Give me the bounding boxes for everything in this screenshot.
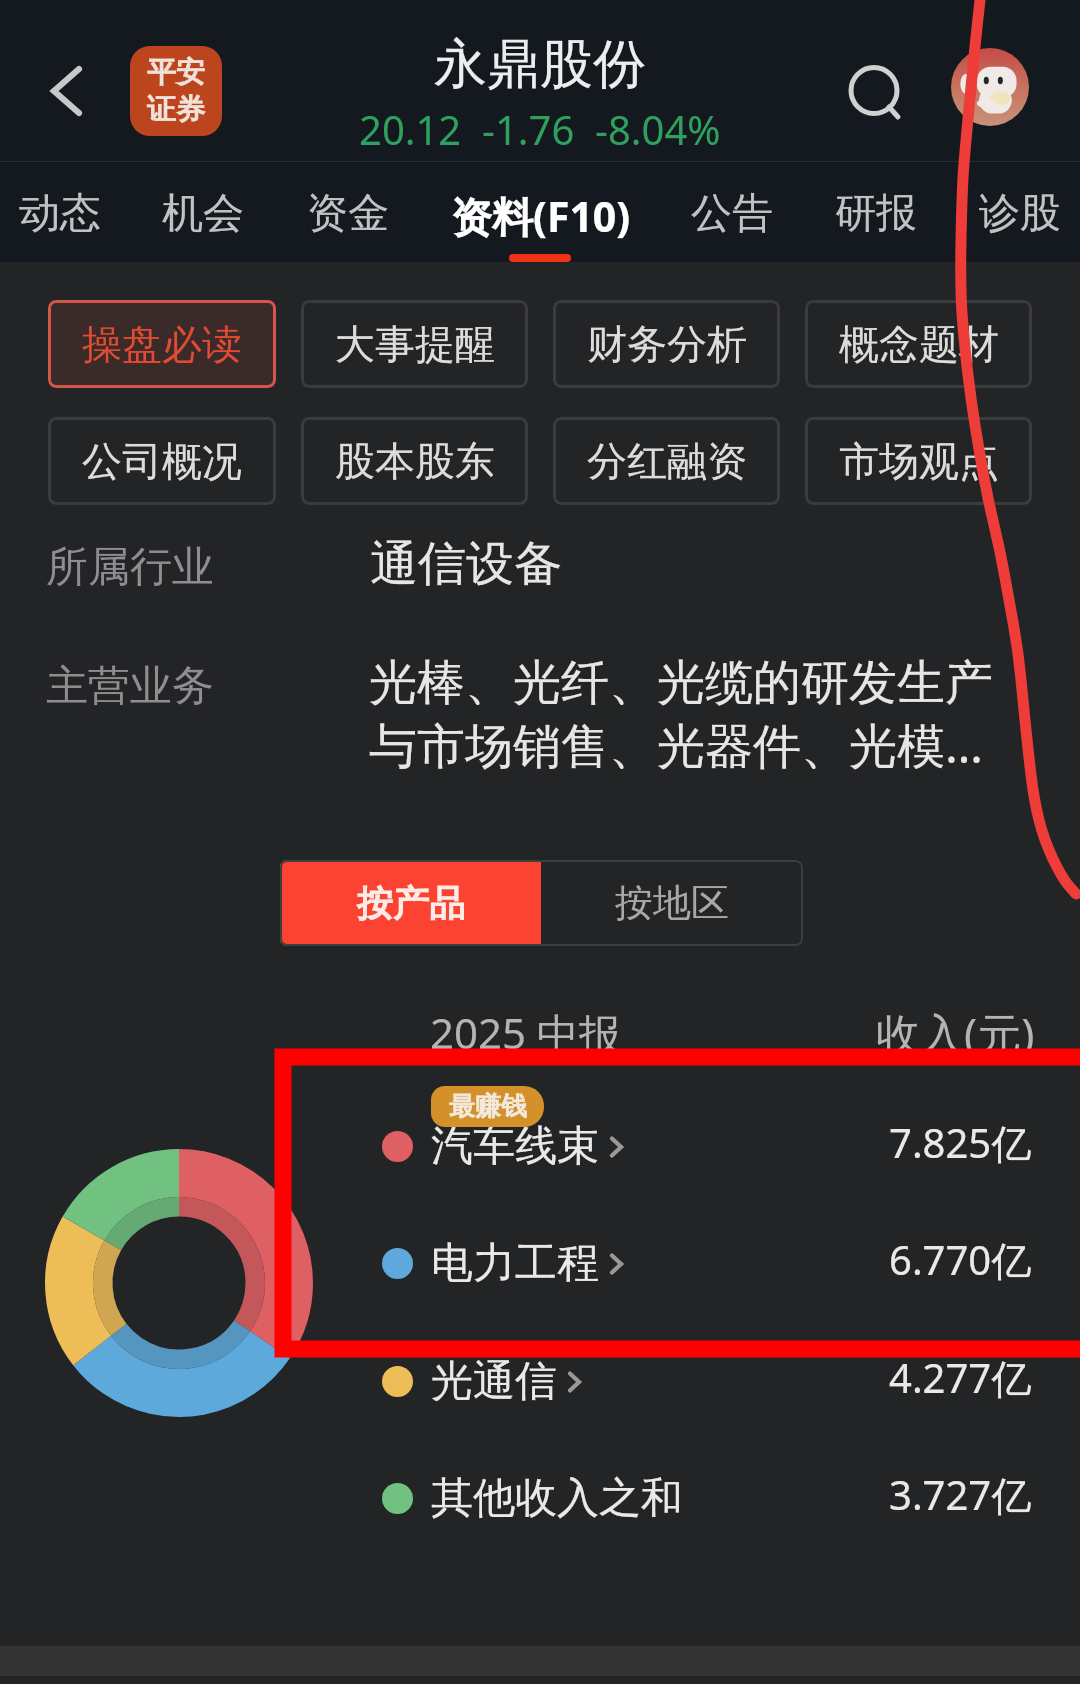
- staticText: 主营业务: [46, 660, 214, 713]
- staticText: 永鼎股份: [434, 31, 646, 98]
- staticText: 机会: [162, 188, 244, 240]
- button[interactable]: 股本股东: [301, 417, 528, 505]
- staticText: 资料(F10): [451, 188, 631, 244]
- staticText: 分红融资: [587, 436, 747, 486]
- staticText: 按产品: [357, 881, 465, 926]
- staticText: 光通信: [431, 1355, 557, 1408]
- staticText: 通信设备: [370, 534, 562, 594]
- staticText: 最赚钱: [449, 1090, 527, 1123]
- button[interactable]: 按地区: [541, 860, 803, 946]
- button[interactable]: 光通信: [382, 1333, 1032, 1429]
- button[interactable]: 资金: [268, 170, 428, 262]
- button[interactable]: 概念题材: [805, 300, 1032, 388]
- button[interactable]: 汽车线束: [382, 1098, 1032, 1194]
- staticText: 3.727亿: [889, 1467, 1032, 1522]
- staticText: 诊股: [979, 188, 1061, 240]
- staticText: 资金: [307, 188, 389, 240]
- staticText: 按地区: [615, 879, 729, 927]
- staticText: 动态: [19, 188, 101, 240]
- staticText: 大事提醒: [335, 319, 495, 369]
- staticText: 财务分析: [587, 319, 747, 369]
- button[interactable]: Profile: [951, 48, 1029, 126]
- button[interactable]: 研报: [796, 170, 956, 262]
- staticText: 汽车线束: [431, 1120, 599, 1173]
- button[interactable]: 资料(F10): [431, 170, 651, 262]
- button[interactable]: 操盘必读: [48, 300, 276, 388]
- staticText: 平安: [147, 54, 205, 91]
- button[interactable]: 公告: [652, 170, 812, 262]
- staticText: 其他收入之和: [431, 1472, 683, 1525]
- staticText: 公告: [691, 188, 773, 240]
- staticText: 6.770亿: [889, 1232, 1032, 1287]
- button[interactable]: 动态: [0, 170, 140, 262]
- staticText: 20.12 -1.76 -8.04%: [359, 102, 721, 156]
- staticText: 研报: [835, 188, 917, 240]
- staticText: 概念题材: [839, 319, 999, 369]
- staticText: 操盘必读: [82, 319, 242, 369]
- button[interactable]: 其他收入之和: [382, 1450, 1032, 1546]
- button[interactable]: 公司概况: [48, 417, 276, 505]
- button[interactable]: 电力工程: [382, 1215, 1032, 1311]
- staticText: 所属行业: [46, 541, 214, 594]
- button[interactable]: 平安: [130, 46, 222, 136]
- button[interactable]: Search: [828, 44, 920, 136]
- button[interactable]: 财务分析: [553, 300, 780, 388]
- button[interactable]: 大事提醒: [301, 300, 528, 388]
- staticText: 电力工程: [431, 1237, 599, 1290]
- button[interactable]: 按产品: [280, 860, 541, 946]
- staticText: 证券: [147, 91, 205, 128]
- button[interactable]: 市场观点: [805, 417, 1032, 505]
- staticText: 4.277亿: [889, 1350, 1032, 1405]
- staticText: 2025 中报: [430, 1004, 622, 1061]
- staticText: 市场观点: [839, 436, 999, 486]
- staticText: 7.825亿: [889, 1115, 1032, 1170]
- staticText: 光棒、光纤、光缆的研发生产与市场销售、光器件、光模…: [369, 653, 999, 777]
- button[interactable]: 机会: [123, 170, 283, 262]
- button[interactable]: Back: [26, 51, 106, 131]
- staticText: 收入(元): [876, 1003, 1035, 1063]
- button[interactable]: 分红融资: [553, 417, 780, 505]
- staticText: 股本股东: [335, 436, 495, 486]
- button[interactable]: 诊股: [940, 170, 1080, 262]
- staticText: 公司概况: [82, 436, 242, 486]
